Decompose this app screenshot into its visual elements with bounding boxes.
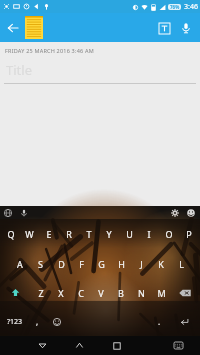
button[interactable]: Back	[2, 17, 24, 39]
button[interactable]: Home	[61, 336, 98, 355]
button[interactable]: Change language	[3, 208, 13, 218]
button[interactable]: B	[111, 278, 131, 307]
button[interactable]: L	[171, 249, 191, 278]
staticText: I	[147, 228, 151, 240]
button[interactable]: Enter	[169, 307, 199, 336]
button[interactable]: W	[20, 219, 39, 249]
staticText: G	[98, 258, 105, 270]
button[interactable]: Voice note	[175, 17, 197, 39]
button[interactable]: C	[71, 278, 91, 307]
staticText: Q	[7, 228, 15, 240]
button[interactable]: H	[111, 249, 131, 278]
staticText: O	[165, 228, 173, 240]
button[interactable]: F	[71, 249, 91, 278]
button[interactable]: FRIDAY 25 MARCH 2016 3:46 AM	[0, 42, 200, 206]
staticText: L	[179, 258, 184, 270]
staticText: J	[140, 258, 143, 270]
button[interactable]: Note colour	[25, 16, 43, 39]
staticText: .	[158, 316, 161, 327]
button[interactable]: P	[179, 219, 199, 249]
staticText: B	[118, 287, 124, 299]
staticText: Title	[6, 61, 32, 79]
staticText: H	[118, 258, 125, 270]
staticText: X	[58, 287, 64, 299]
button[interactable]: Period	[150, 307, 169, 336]
button[interactable]: J	[131, 249, 151, 278]
button[interactable]: U	[119, 219, 139, 249]
staticText: Z	[38, 287, 44, 299]
button[interactable]: K	[151, 249, 171, 278]
button[interactable]: R	[59, 219, 79, 249]
button[interactable]: Voice input	[19, 208, 29, 218]
button[interactable]: M	[151, 278, 171, 307]
button[interactable]: S	[30, 249, 51, 278]
staticText: R	[66, 228, 72, 240]
button[interactable]: Z	[30, 278, 51, 307]
staticText: M	[157, 287, 166, 299]
button[interactable]: Text formatting	[153, 17, 175, 39]
button[interactable]: O	[159, 219, 179, 249]
button[interactable]: ?123	[1, 307, 28, 336]
staticText: A	[17, 258, 23, 270]
button[interactable]: V	[91, 278, 111, 307]
button[interactable]: I	[139, 219, 159, 249]
button[interactable]: Emoji	[186, 208, 196, 218]
staticText: ?123	[7, 317, 23, 327]
button[interactable]: A	[9, 249, 30, 278]
staticText: K	[158, 258, 164, 270]
button[interactable]: Backspace	[171, 278, 199, 307]
staticText: F	[79, 258, 84, 270]
button[interactable]: Q	[1, 219, 20, 249]
button[interactable]: Shift	[1, 278, 30, 307]
staticText: ,	[36, 316, 39, 327]
staticText: P	[186, 228, 192, 240]
button[interactable]: X	[51, 278, 71, 307]
button[interactable]: Comma	[28, 307, 47, 336]
staticText: E	[46, 228, 52, 240]
staticText: S	[38, 258, 43, 270]
button[interactable]: Switch keyboard	[163, 336, 193, 355]
button[interactable]: T	[79, 219, 99, 249]
button[interactable]: E	[39, 219, 59, 249]
staticText: Y	[106, 228, 112, 240]
button[interactable]: N	[131, 278, 151, 307]
button[interactable]: Close keyboard	[23, 336, 61, 355]
staticText: 76%	[170, 4, 180, 10]
staticText: U	[126, 228, 133, 240]
button[interactable]: D	[51, 249, 71, 278]
button[interactable]: G	[91, 249, 111, 278]
staticText: 3:46	[184, 2, 198, 12]
button[interactable]: Space	[66, 307, 150, 336]
staticText: W	[25, 228, 34, 240]
staticText: D	[58, 258, 65, 270]
staticText: V	[98, 287, 104, 299]
staticText: N	[138, 287, 145, 299]
button[interactable]: Emoji	[47, 307, 66, 336]
staticText: T	[86, 228, 92, 240]
button[interactable]: Y	[99, 219, 119, 249]
button[interactable]: Recent apps	[98, 336, 135, 355]
staticText: FRIDAY 25 MARCH 2016 3:46 AM	[5, 47, 94, 54]
button[interactable]: Keyboard settings	[170, 208, 180, 218]
staticText: C	[78, 287, 84, 299]
